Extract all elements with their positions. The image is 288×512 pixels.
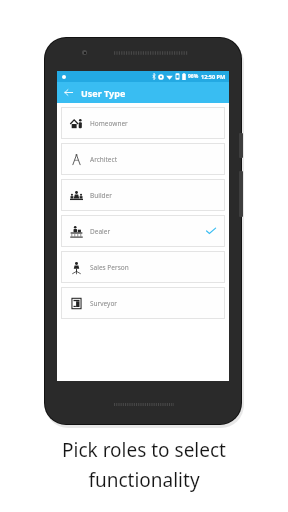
button[interactable]: Back [61, 85, 76, 100]
button[interactable]: Sales Person [61, 251, 225, 283]
staticText: Dealer [90, 227, 111, 236]
staticText: Pick roles to select [62, 437, 226, 463]
staticText: functionality [88, 467, 200, 493]
button[interactable]: Builder [61, 179, 225, 211]
staticText: Sales Person [90, 263, 129, 272]
button[interactable]: Architect [61, 143, 225, 175]
staticText: Surveyor [90, 299, 118, 308]
button[interactable]: Dealer [61, 215, 225, 247]
staticText: Architect [90, 155, 118, 164]
staticText: User Type [81, 87, 126, 99]
button[interactable]: Homeowner [61, 107, 225, 139]
staticText: Homeowner [90, 119, 128, 128]
staticText: Builder [90, 191, 112, 200]
staticText: 12:50 PM [201, 73, 226, 80]
button[interactable]: Surveyor [61, 287, 225, 319]
staticText: 96% [188, 73, 199, 80]
